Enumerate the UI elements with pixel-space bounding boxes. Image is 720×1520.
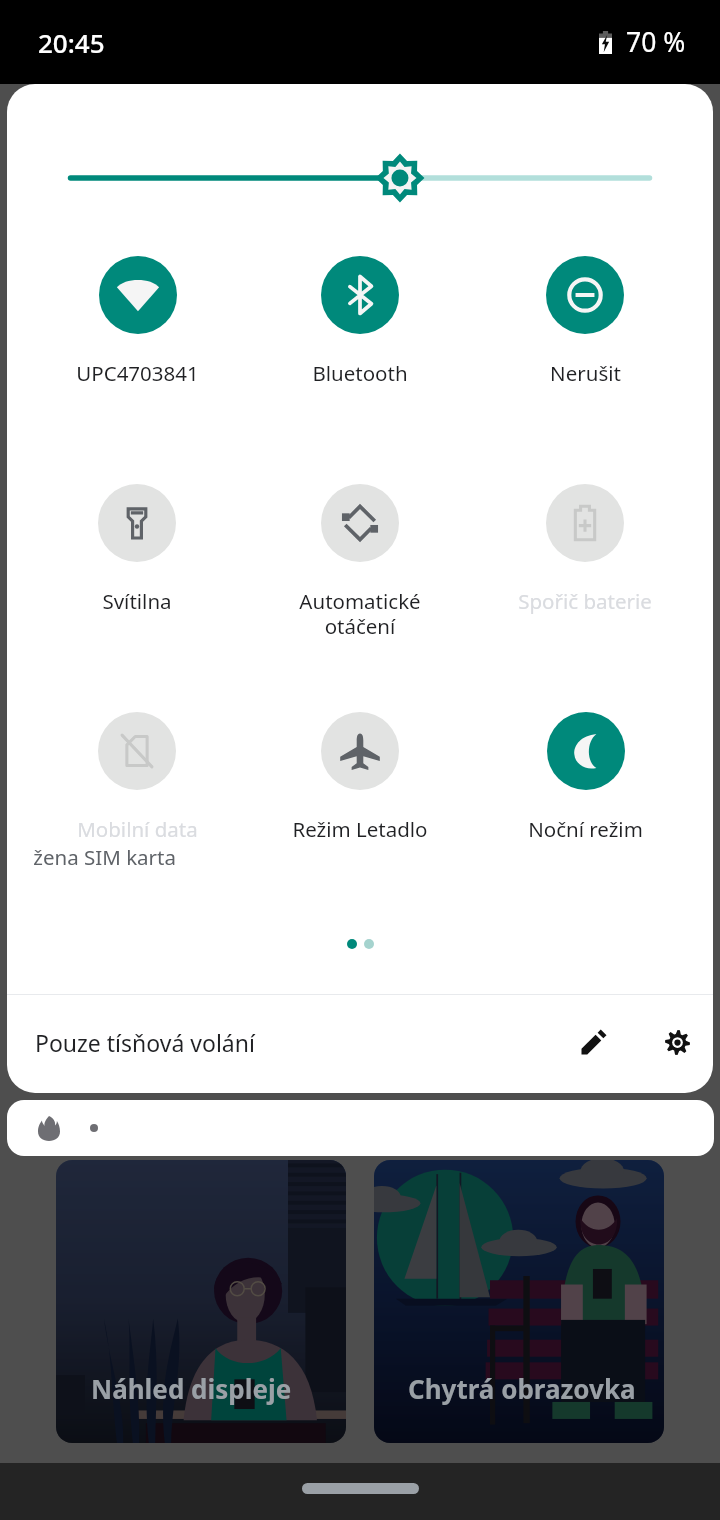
staticText: Svítilna — [102, 587, 172, 615]
staticText: Pouze tísňová volání — [35, 1027, 255, 1058]
staticText: 70 % — [626, 24, 686, 60]
button[interactable]: Chytrá obrazovka — [374, 1160, 664, 1443]
button[interactable]: Bluetooth — [248, 238, 472, 387]
button[interactable]: UPC4703841 — [25, 238, 249, 387]
button[interactable]: Upravit dlaždice — [563, 1011, 625, 1073]
staticText: Bluetooth — [312, 359, 408, 387]
button[interactable]: Spořič baterie — [473, 466, 697, 615]
staticText: Mobilní data — [77, 815, 198, 843]
button[interactable]: Svítilna — [25, 466, 249, 615]
button[interactable] — [7, 1100, 714, 1156]
staticText: Není vložena SIM karta — [34, 843, 176, 870]
button[interactable]: Mobilní data — [25, 694, 249, 870]
staticText: Chytrá obrazovka — [408, 1371, 636, 1406]
button[interactable]: Náhled displeje — [56, 1160, 346, 1443]
staticText: Režim Letadlo — [292, 815, 428, 843]
button[interactable]: Automatické otáčení — [248, 466, 472, 640]
staticText: Spořič baterie — [518, 587, 652, 615]
staticText: Automatické otáčení — [299, 587, 421, 640]
button[interactable]: Režim Letadlo — [248, 694, 472, 843]
staticText: Náhled displeje — [91, 1371, 292, 1406]
button[interactable]: Nastavení — [646, 1011, 708, 1073]
button[interactable]: Nerušit — [473, 238, 697, 387]
button[interactable]: Noční režim — [473, 694, 697, 843]
staticText: Noční režim — [528, 815, 643, 843]
staticText: 20:45 — [38, 25, 105, 60]
staticText: UPC4703841 — [76, 359, 199, 387]
staticText: Nerušit — [550, 359, 621, 387]
